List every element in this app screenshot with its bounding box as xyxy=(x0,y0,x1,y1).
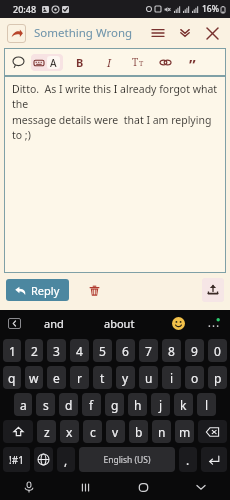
staticText: y xyxy=(122,370,129,386)
button[interactable]: Menu xyxy=(147,22,169,44)
button[interactable]: 3 xyxy=(47,339,66,362)
staticText: e xyxy=(53,370,60,386)
staticText: v xyxy=(112,424,119,440)
staticText: message details were that I am replying … xyxy=(12,113,220,142)
button[interactable]: c xyxy=(83,420,102,443)
button[interactable]: n xyxy=(152,420,171,443)
button[interactable]: Hide keyboard xyxy=(172,474,230,500)
staticText: T xyxy=(132,55,139,69)
staticText: 1 xyxy=(9,343,16,359)
button[interactable]: , xyxy=(57,447,75,472)
button[interactable]: !#1 xyxy=(3,447,30,472)
button[interactable]: p xyxy=(208,366,227,389)
button[interactable]: Collapse xyxy=(174,22,196,44)
button[interactable]: g xyxy=(105,393,124,416)
button[interactable]: 6 xyxy=(116,339,135,362)
staticText: I xyxy=(107,55,112,70)
button[interactable]: and xyxy=(44,316,64,331)
button[interactable]: x xyxy=(60,420,79,443)
staticText: B xyxy=(76,55,84,70)
button[interactable]: w xyxy=(25,366,43,389)
staticText: Something Wrong with Sit… xyxy=(34,25,147,41)
staticText: 5 xyxy=(99,343,106,359)
button[interactable]: Enter xyxy=(201,447,227,472)
staticText: g xyxy=(111,397,119,413)
staticText: t xyxy=(100,370,105,386)
staticText: ” xyxy=(189,54,196,70)
button[interactable]: Recent apps xyxy=(57,474,114,500)
staticText: j xyxy=(159,397,163,413)
button[interactable]: 7 xyxy=(139,339,158,362)
button[interactable]: Delete xyxy=(83,279,105,301)
button[interactable]: 1 xyxy=(3,339,21,362)
button[interactable]: More options xyxy=(204,315,222,333)
staticText: i xyxy=(170,370,174,386)
staticText: r xyxy=(77,370,82,386)
button[interactable]: d xyxy=(59,393,78,416)
staticText: l xyxy=(205,397,209,413)
button[interactable]: h xyxy=(128,393,147,416)
button[interactable]: Voice input xyxy=(0,474,57,500)
button[interactable]: B xyxy=(72,54,88,70)
button[interactable]: Shift xyxy=(3,420,33,443)
staticText: 8 xyxy=(168,343,175,359)
button[interactable]: Close xyxy=(201,22,223,44)
button[interactable]: 4 xyxy=(70,339,89,362)
button[interactable]: m xyxy=(175,420,194,443)
button[interactable]: f xyxy=(82,393,101,416)
button[interactable]: i xyxy=(162,366,181,389)
staticText: c xyxy=(90,424,96,440)
button[interactable]: s xyxy=(36,393,55,416)
staticText: 3 xyxy=(53,343,60,359)
staticText: o xyxy=(191,370,199,386)
button[interactable]: t xyxy=(93,366,112,389)
button[interactable]: Emoji xyxy=(172,317,185,330)
staticText: s xyxy=(43,397,49,413)
button[interactable]: a xyxy=(14,393,32,416)
button[interactable]: u xyxy=(139,366,158,389)
button[interactable]: Comment xyxy=(10,54,26,70)
button[interactable]: Quote xyxy=(184,54,200,70)
staticText: 4 xyxy=(76,343,83,359)
button[interactable]: Change language xyxy=(34,447,53,472)
button[interactable]: Ditto. As I write this I already forgot … xyxy=(4,76,226,273)
button[interactable]: z xyxy=(37,420,56,443)
staticText: d xyxy=(65,397,73,413)
staticText: k xyxy=(180,397,187,413)
staticText: 6 xyxy=(122,343,129,359)
button[interactable]: Reply xyxy=(7,24,26,43)
button[interactable]: y xyxy=(116,366,135,389)
button[interactable]: 5 xyxy=(93,339,112,362)
button[interactable]: about xyxy=(104,316,135,331)
staticText: m xyxy=(179,424,191,440)
button[interactable]: 0 xyxy=(208,339,227,362)
button[interactable]: Link xyxy=(157,54,173,70)
button[interactable]: e xyxy=(47,366,66,389)
button[interactable]: Text style xyxy=(34,56,60,69)
button[interactable]: k xyxy=(174,393,193,416)
button[interactable]: . xyxy=(179,447,197,472)
button[interactable]: o xyxy=(185,366,204,389)
button[interactable]: English (US) xyxy=(79,447,175,472)
button[interactable]: Backspace xyxy=(198,420,227,443)
button[interactable]: 2 xyxy=(25,339,43,362)
staticText: English (US) xyxy=(103,454,151,466)
staticText: z xyxy=(44,424,50,440)
button[interactable]: r xyxy=(70,366,89,389)
button[interactable]: Text size xyxy=(130,54,146,70)
button[interactable]: Home xyxy=(114,474,172,500)
button[interactable]: b xyxy=(129,420,148,443)
button[interactable]: 8 xyxy=(162,339,181,362)
button[interactable]: j xyxy=(151,393,170,416)
button[interactable]: Clipboard xyxy=(8,318,21,329)
button[interactable]: q xyxy=(3,366,21,389)
button[interactable]: Reply xyxy=(6,279,69,301)
button[interactable]: v xyxy=(106,420,125,443)
button[interactable]: I xyxy=(101,54,117,70)
staticText: 16% xyxy=(202,3,219,15)
staticText: 0 xyxy=(214,343,221,359)
staticText: 7 xyxy=(145,343,152,359)
button[interactable]: Upload attachment xyxy=(202,278,224,302)
button[interactable]: l xyxy=(197,393,216,416)
button[interactable]: 9 xyxy=(185,339,204,362)
